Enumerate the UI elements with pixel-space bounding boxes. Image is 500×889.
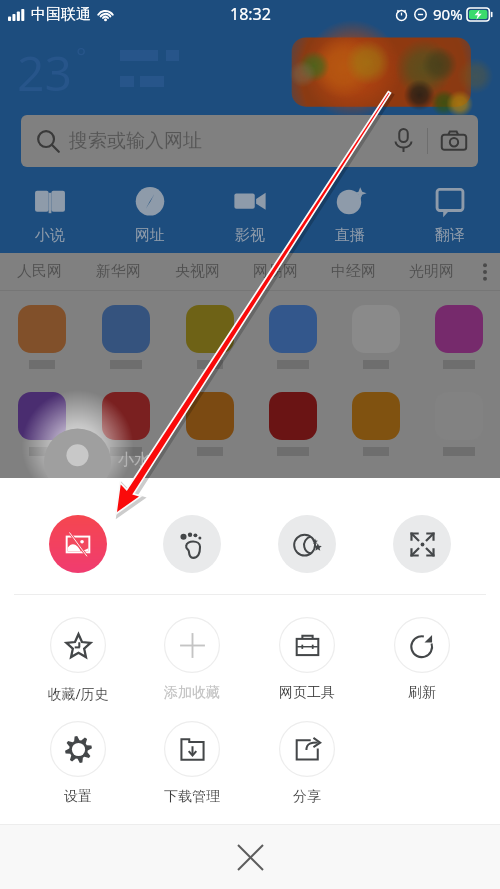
button[interactable]: 网易网 <box>236 262 314 281</box>
staticText: 人民网 <box>17 262 62 281</box>
staticText: 23 <box>17 40 72 105</box>
staticText: 央视网 <box>175 262 220 281</box>
staticText: 刷新 <box>408 684 436 702</box>
button[interactable]: 下载管理 <box>135 721 249 806</box>
button[interactable]: 影视 <box>200 186 300 245</box>
staticText: 18:32 <box>230 3 271 25</box>
button[interactable] <box>168 392 251 456</box>
button[interactable]: 央视网 <box>158 262 236 281</box>
button[interactable] <box>84 305 168 369</box>
button[interactable]: 人民网 <box>0 262 79 281</box>
button[interactable]: 网址 <box>100 186 200 245</box>
button[interactable] <box>417 305 500 369</box>
button[interactable]: 中经网 <box>314 262 392 281</box>
button[interactable]: 添加收藏 <box>135 617 249 702</box>
button[interactable]: No image mode <box>21 515 135 573</box>
staticText: 收藏/历史 <box>47 684 109 703</box>
button[interactable] <box>0 305 84 369</box>
button[interactable] <box>251 305 334 369</box>
button[interactable]: 小说 <box>0 186 100 245</box>
staticText: 影视 <box>235 226 265 245</box>
button[interactable]: Footprints <box>135 515 249 573</box>
button[interactable]: More <box>470 253 500 290</box>
button[interactable]: 翻译 <box>400 186 500 245</box>
staticText: 光明网 <box>409 262 454 281</box>
button[interactable]: 分享 <box>249 721 364 806</box>
button[interactable]: 光明网 <box>392 262 470 281</box>
staticText: 小说 <box>35 226 65 245</box>
staticText: 翻译 <box>435 226 465 245</box>
button[interactable]: 设置 <box>21 721 135 806</box>
button[interactable] <box>0 392 84 456</box>
staticText: 中经网 <box>331 262 376 281</box>
button[interactable]: 收藏/历史 <box>21 617 135 703</box>
button[interactable]: 网页工具 <box>249 617 364 702</box>
button[interactable] <box>84 392 168 456</box>
staticText: 网易网 <box>253 262 298 281</box>
staticText: 分享 <box>293 788 321 806</box>
staticText: 下载管理 <box>164 788 220 806</box>
staticText: 网址 <box>135 226 165 245</box>
button[interactable] <box>251 392 334 456</box>
staticText: 新华网 <box>96 262 141 281</box>
button[interactable]: Night mode <box>249 515 364 573</box>
button[interactable]: Full screen <box>364 515 479 573</box>
button[interactable]: 新华网 <box>79 262 158 281</box>
button[interactable] <box>417 392 500 456</box>
staticText: 网页工具 <box>279 684 335 702</box>
staticText: 搜索或输入网址 <box>69 129 202 153</box>
staticText: 中国联通 <box>31 5 91 24</box>
button[interactable] <box>334 305 417 369</box>
button[interactable]: 直播 <box>300 186 400 245</box>
staticText: 添加收藏 <box>164 684 220 702</box>
button[interactable] <box>168 305 251 369</box>
staticText: 直播 <box>335 226 365 245</box>
button[interactable]: Close <box>222 829 278 885</box>
staticText: 90% <box>433 4 463 24</box>
staticText: 小水 <box>118 450 150 470</box>
button[interactable]: 刷新 <box>364 617 479 702</box>
staticText: 设置 <box>64 788 92 806</box>
button[interactable] <box>334 392 417 456</box>
